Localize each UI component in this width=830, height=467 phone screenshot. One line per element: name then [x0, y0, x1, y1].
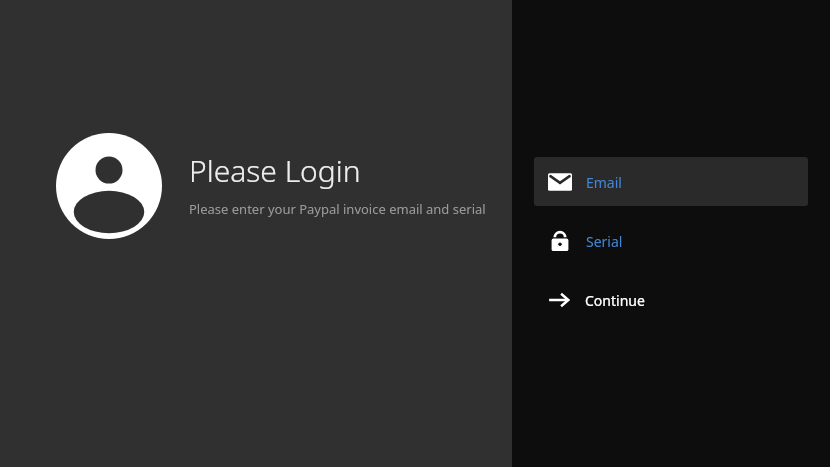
button[interactable]: Serial	[534, 216, 808, 265]
staticText: Please enter your Paypal invoice email a…	[189, 200, 486, 218]
button[interactable]: Email	[534, 157, 808, 206]
staticText: Email	[586, 173, 622, 192]
staticText: Please Login	[189, 150, 361, 191]
staticText: Continue	[585, 291, 645, 310]
other: Serial	[548, 229, 572, 253]
button[interactable]: Continue	[534, 275, 808, 324]
staticText: Serial	[586, 232, 623, 251]
other: Email	[548, 170, 572, 194]
other: Continue	[546, 287, 572, 313]
